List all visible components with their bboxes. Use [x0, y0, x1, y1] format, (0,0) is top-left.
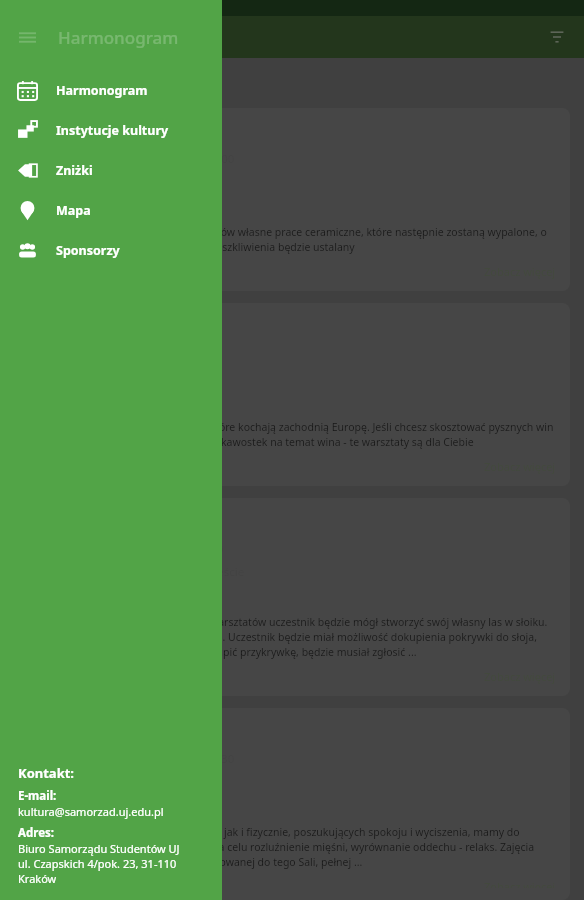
staticText: Warsztaty: [56, 197, 110, 213]
button[interactable]: Zobacz więcej: [28, 264, 556, 279]
staticText: czwartek 13.04.2023, 17:00-19:00: [56, 151, 235, 167]
staticText: Warsztaty ceramiczne: [28, 120, 195, 142]
button[interactable]: Close navigation menu: [14, 24, 40, 50]
button[interactable]: Las w słoiku: [14, 498, 570, 696]
staticText: Biuro Samorządu Studentów UJ: [18, 841, 180, 856]
button[interactable]: Zniżki: [0, 150, 222, 190]
staticText: Harmonogram: [58, 26, 179, 49]
button[interactable]: Instytucje kultury: [0, 110, 222, 150]
button[interactable]: Filter: [542, 22, 572, 52]
staticText: ul. Czapskich 4/pok. 23, 31-110 Kraków: [18, 856, 212, 886]
staticText: kultura@samorzad.uj.edu.pl: [18, 804, 164, 819]
staticText: Kontakt:: [18, 764, 74, 782]
staticText: Dla wszystkich zmęczonych psychicznie ja…: [28, 825, 556, 869]
staticText: Adres:: [18, 825, 55, 841]
staticText: Mapa: [56, 202, 91, 219]
button[interactable]: Warsztaty ceramiczne: [14, 108, 570, 291]
staticText: Sponsorzy: [56, 242, 120, 259]
staticText: Harmonogram: [56, 82, 148, 99]
button[interactable]: Joga: [14, 708, 570, 900]
button[interactable]: Warsztaty degustacyjne: [14, 303, 570, 486]
staticText: ul. Floriańska 3, Kraków: [56, 174, 184, 190]
staticText: ul. Gołębia 24, Kraków Śródmieście: [56, 564, 245, 580]
button[interactable]: Mapa: [0, 190, 222, 230]
button[interactable]: Sponsorzy: [0, 230, 222, 270]
staticText: Warsztaty florystyczne. Podczas tych war…: [28, 615, 556, 659]
button[interactable]: Zobacz więcej: [28, 669, 556, 684]
staticText: E-mail:: [18, 788, 57, 804]
button[interactable]: Zobacz więcej: [28, 459, 556, 474]
staticText: Uczestnicy wykonają w trakcie warsztatów…: [28, 225, 556, 254]
button[interactable]: Open navigation menu: [14, 24, 40, 50]
staticText: sobota 15.04.2023, 11:00-13:00: [56, 541, 224, 557]
staticText: niedziela 16.04.2023, 10:00-11:30: [56, 751, 235, 767]
staticText: Instytucje kultury: [56, 122, 169, 139]
staticText: Zniżki: [56, 162, 93, 179]
button[interactable]: Zobacz więcej: [28, 879, 556, 888]
staticText: ul. Podwale 7, Kraków: [56, 774, 174, 790]
button[interactable]: 13.04.2023 - 27.04.2023: [14, 68, 196, 98]
staticText: Warsztaty te są skierowane do osób, któr…: [28, 420, 556, 449]
button[interactable]: Harmonogram: [0, 70, 222, 110]
staticText: 13.04.2023 - 27.04.2023: [51, 75, 184, 91]
staticText: Harmonogram: [58, 26, 179, 49]
staticText: Warsztaty: [56, 797, 110, 813]
